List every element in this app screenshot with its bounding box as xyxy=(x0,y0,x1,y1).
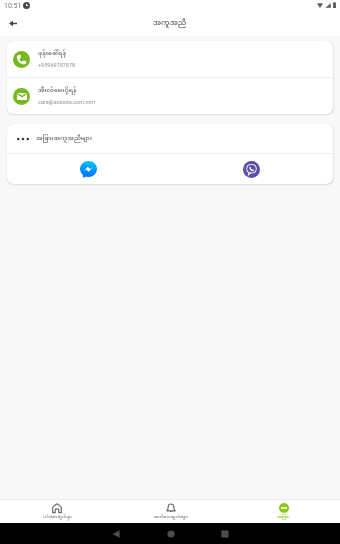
staticText: ဖုန်းခေါ်ရန် xyxy=(38,49,67,58)
staticText: အီးလ်မေးပို့ရန် xyxy=(38,86,77,95)
button[interactable]: အသိပေးချက်များ xyxy=(114,499,227,523)
staticText: 10:51 xyxy=(4,2,22,10)
staticText: အခြား xyxy=(277,514,290,520)
button[interactable]: Home xyxy=(163,526,178,541)
button[interactable]: Viber xyxy=(243,161,260,178)
button[interactable]: ဖုန်းခေါ်ရန် xyxy=(7,41,333,77)
button[interactable]: Recent apps xyxy=(217,526,232,541)
button[interactable]: အခြားအကူအညီများ xyxy=(7,124,333,153)
staticText: care@ananda.com.mm xyxy=(38,99,96,105)
staticText: အကူအညီ xyxy=(153,18,187,28)
staticText: +95969787878 xyxy=(38,62,76,68)
button[interactable]: Back xyxy=(4,15,21,32)
button[interactable]: ပင်မစာမျက်နှာ xyxy=(0,499,114,523)
staticText: အသိပေးချက်များ xyxy=(153,514,189,520)
staticText: ပင်မစာမျက်နှာ xyxy=(43,514,72,520)
button[interactable]: Back xyxy=(108,526,123,541)
staticText: အခြားအကူအညီများ xyxy=(36,134,92,143)
button[interactable]: အီးလ်မေးပို့ရန် xyxy=(7,78,333,114)
button[interactable]: Messenger xyxy=(80,161,97,178)
button[interactable]: အခြား xyxy=(227,499,340,523)
